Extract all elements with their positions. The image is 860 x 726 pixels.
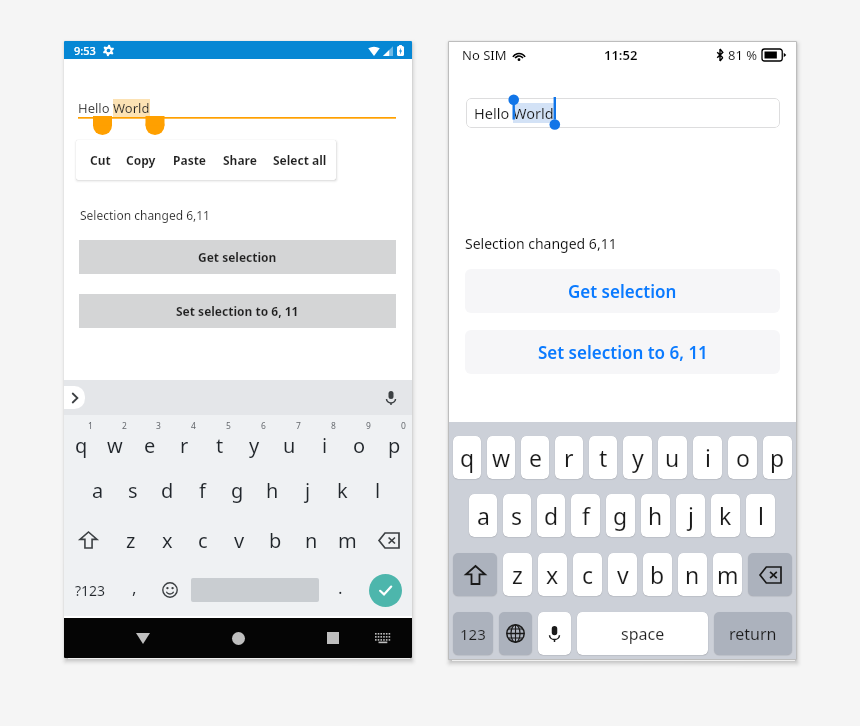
staticText: q [460,442,475,473]
button[interactable]: m [329,515,365,565]
button[interactable]: l [746,494,775,537]
button[interactable]: v [221,515,257,565]
button[interactable]: w [487,436,515,479]
button[interactable]: Backspace [748,553,792,596]
button[interactable]: Get selection [79,240,396,274]
button[interactable]: 2 [98,415,132,465]
button[interactable]: c [573,553,602,596]
button[interactable]: Set selection to 6, 11 [465,330,780,374]
staticText: No SIM [462,46,507,64]
button[interactable]: Share [217,140,262,180]
staticText: 123 [460,624,486,644]
button[interactable]: g [606,494,635,537]
button[interactable]: Comma [117,565,152,615]
staticText: 7 [296,420,301,432]
button[interactable]: j [676,494,705,537]
button[interactable]: 0 [377,415,412,465]
button[interactable]: Emoji [152,565,187,615]
staticText: World [513,103,554,123]
button[interactable]: 4 [167,415,202,465]
button[interactable]: y [623,436,652,479]
button[interactable]: Switch keyboard [366,621,400,655]
button[interactable]: Shift [64,515,112,565]
staticText: f [199,477,206,504]
button[interactable]: Shift [453,553,497,596]
button[interactable]: 7 [272,415,307,465]
button[interactable]: p [763,436,792,479]
button[interactable]: space [577,612,708,655]
button[interactable]: o [728,436,757,479]
button[interactable]: Cut [85,140,115,180]
button[interactable]: h [255,465,290,515]
button[interactable]: 8 [307,415,342,465]
button[interactable]: Hello [466,98,780,128]
button[interactable]: g [220,465,255,515]
button[interactable]: 5 [202,415,237,465]
staticText: ?123 [75,581,106,600]
staticText: . [338,576,343,599]
button[interactable]: a [80,465,115,515]
button[interactable]: Dictate [538,612,571,655]
button[interactable]: f [571,494,600,537]
button[interactable]: Get selection [465,269,780,313]
staticText: 3 [156,420,161,432]
button[interactable]: f [185,465,220,515]
button[interactable]: n [678,553,707,596]
button[interactable]: x [149,515,185,565]
button[interactable]: Space [187,565,323,615]
button[interactable]: q [453,436,481,479]
button[interactable]: 3 [132,415,167,465]
button[interactable]: Backspace [365,515,412,565]
button[interactable]: n [293,515,329,565]
button[interactable]: Enter [358,565,412,615]
staticText: s [128,477,138,504]
button[interactable]: u [658,436,687,479]
button[interactable]: m [713,553,742,596]
staticText: Select all [273,152,327,168]
button[interactable]: v [608,553,637,596]
button[interactable]: Period [323,565,358,615]
button[interactable]: 9 [342,415,377,465]
button[interactable]: d [537,494,565,537]
button[interactable]: d [150,465,185,515]
button[interactable]: Paste [167,140,212,180]
button[interactable]: ?123 [64,565,117,615]
button[interactable]: Voice input [380,387,402,409]
button[interactable]: z [503,553,532,596]
button[interactable]: Set selection to 6, 11 [79,294,396,328]
staticText: 6 [261,420,266,432]
button[interactable]: k [711,494,740,537]
button[interactable]: Show suggestions [64,386,85,409]
staticText: 9 [366,420,371,432]
button[interactable]: 1 [64,415,98,465]
button[interactable]: 123 [453,612,493,655]
button[interactable]: return [714,612,792,655]
button[interactable]: a [469,494,497,537]
button[interactable]: c [185,515,221,565]
button[interactable]: Recents [314,619,352,657]
staticText: d [161,477,174,504]
button[interactable]: b [257,515,293,565]
button[interactable]: k [325,465,360,515]
button[interactable]: h [641,494,670,537]
staticText: q [75,432,88,459]
button[interactable]: Select all [267,140,333,180]
button[interactable]: j [290,465,325,515]
button[interactable]: e [521,436,549,479]
button[interactable]: t [589,436,617,479]
button[interactable]: x [538,553,567,596]
button[interactable]: Change keyboard [499,612,532,655]
button[interactable]: s [115,465,150,515]
staticText: s [511,500,523,531]
button[interactable]: s [503,494,531,537]
button[interactable]: z [112,515,149,565]
button[interactable]: Copy [120,140,162,180]
button[interactable]: i [693,436,722,479]
button[interactable]: r [555,436,583,479]
button[interactable]: Back [124,619,162,657]
staticText: r [564,442,574,473]
button[interactable]: b [643,553,672,596]
button[interactable]: l [360,465,395,515]
button[interactable]: 6 [237,415,272,465]
button[interactable]: Home [219,619,257,657]
